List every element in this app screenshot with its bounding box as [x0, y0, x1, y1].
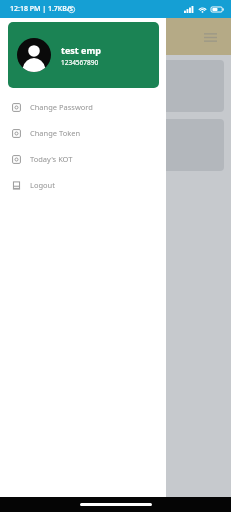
- button[interactable]: [7, 119, 224, 171]
- button[interactable]: [7, 60, 224, 112]
- staticText: 12:18 PM | 1.7KB/s: [10, 4, 73, 14]
- staticText: Logout: [30, 180, 55, 190]
- button[interactable]: Open navigation drawer: [197, 24, 223, 50]
- button[interactable]: Change Token: [0, 120, 166, 146]
- button[interactable]: test emp: [8, 22, 159, 88]
- button[interactable]: Today's KOT: [0, 146, 166, 172]
- button[interactable]: Logout: [0, 172, 166, 198]
- staticText: 1234567890: [61, 58, 99, 67]
- staticText: Change Token: [30, 128, 81, 138]
- button[interactable]: Change Password: [0, 94, 166, 120]
- staticText: Change Password: [30, 102, 93, 112]
- staticText: test emp: [61, 44, 101, 56]
- staticText: Today's KOT: [30, 154, 73, 164]
